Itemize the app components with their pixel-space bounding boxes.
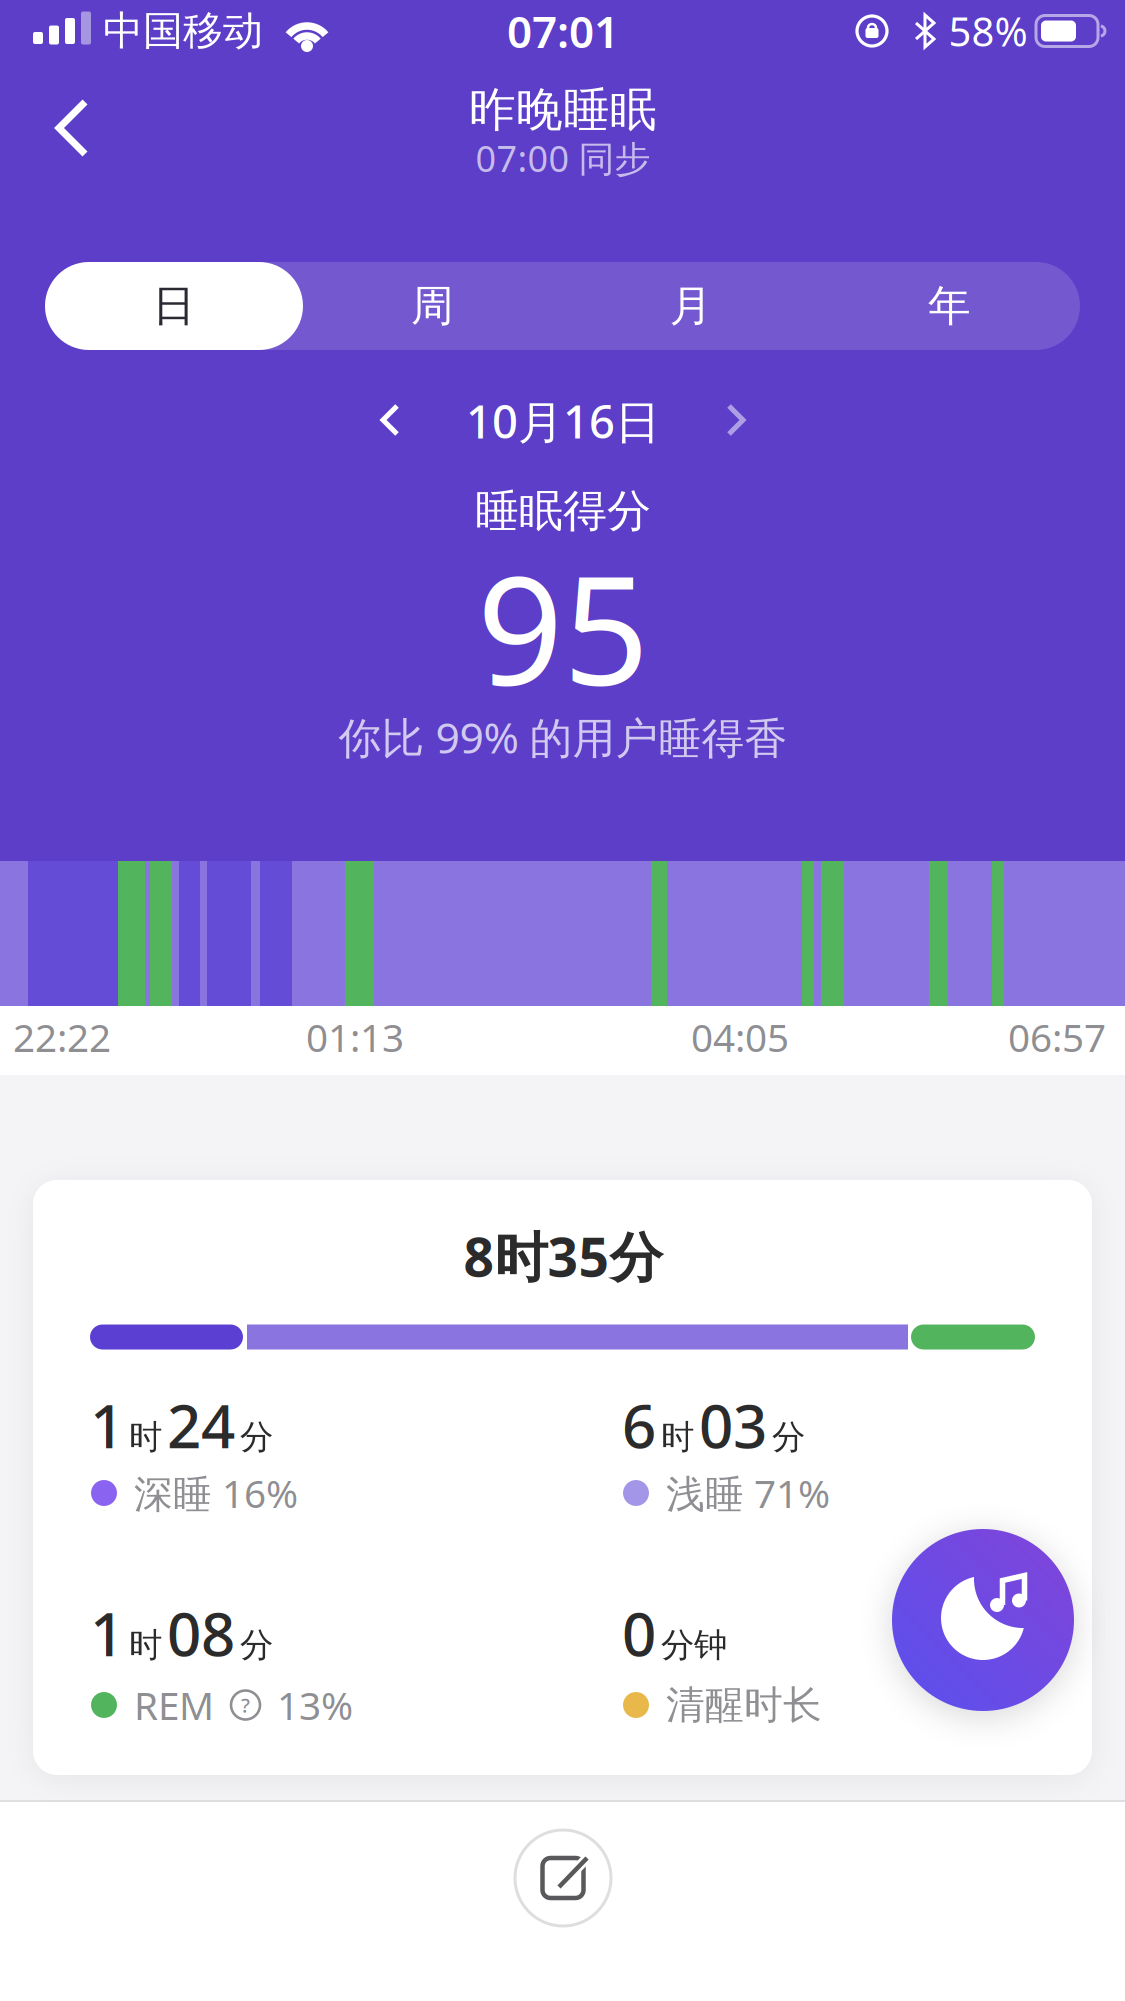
staticText: 04:05 <box>691 1011 789 1063</box>
staticText: 年 <box>928 280 971 332</box>
staticText: 日 <box>152 280 195 332</box>
staticText: 22:22 <box>13 1011 111 1063</box>
staticText: 8时35分 <box>463 1221 662 1291</box>
staticText: 06:57 <box>1008 1011 1106 1063</box>
staticText: 1 <box>90 1385 124 1465</box>
staticText: 95 <box>477 527 649 727</box>
button[interactable]: 年 <box>820 262 1078 350</box>
staticText: 时 <box>129 1625 162 1666</box>
staticText: 07:01 <box>507 2 619 60</box>
button[interactable]: Back <box>55 98 95 158</box>
staticText: 分 <box>240 1417 273 1458</box>
staticText: 深睡 16% <box>134 1467 298 1519</box>
staticText: 13% <box>277 1679 353 1731</box>
button[interactable]: 周 <box>303 262 561 350</box>
staticText: 24 <box>167 1385 235 1465</box>
staticText: 10月16日 <box>466 391 660 451</box>
staticText: 分 <box>240 1625 273 1666</box>
staticText: 浅睡 71% <box>666 1467 830 1519</box>
staticText: 月 <box>669 280 712 332</box>
staticText: 你比 99% 的用户睡得香 <box>338 709 787 765</box>
staticText: 昨晚睡眠 <box>469 81 657 139</box>
button[interactable]: 日 <box>45 262 303 350</box>
staticText: 01:13 <box>306 1011 404 1063</box>
staticText: 03 <box>699 1385 767 1465</box>
button[interactable]: Edit <box>515 1830 611 1926</box>
staticText: ? <box>241 1692 250 1718</box>
button[interactable]: Sleep sounds <box>892 1529 1074 1711</box>
button[interactable]: 月 <box>562 262 820 350</box>
staticText: 清醒时长 <box>666 1681 822 1729</box>
staticText: 中国移动 <box>103 6 263 55</box>
staticText: 58% <box>948 4 1027 57</box>
staticText: 0 <box>622 1593 656 1673</box>
staticText: 6 <box>622 1385 656 1465</box>
staticText: 分钟 <box>661 1625 727 1666</box>
staticText: REM <box>134 1679 214 1731</box>
staticText: 分 <box>772 1417 805 1458</box>
staticText: 睡眠得分 <box>475 484 651 538</box>
staticText: 周 <box>411 280 454 332</box>
staticText: 时 <box>661 1417 694 1458</box>
button[interactable]: What is REM <box>231 1690 260 1719</box>
staticText: 1 <box>90 1593 124 1673</box>
button[interactable]: Previous day <box>381 404 401 438</box>
staticText: 08 <box>167 1593 235 1673</box>
button[interactable]: Next day <box>725 404 745 438</box>
staticText: 07:00 同步 <box>475 134 650 182</box>
staticText: 时 <box>129 1417 162 1458</box>
